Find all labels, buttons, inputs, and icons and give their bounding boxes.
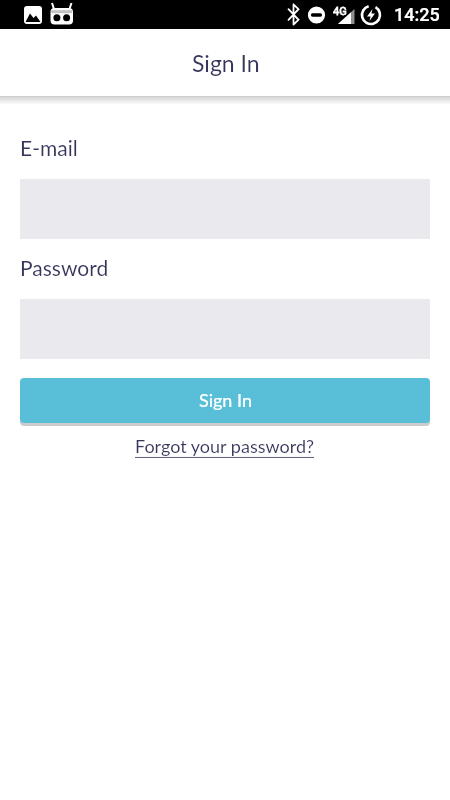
button[interactable]: Forgot your password? xyxy=(135,435,315,457)
staticText: 14:25 xyxy=(394,4,440,25)
staticText: Password xyxy=(20,255,109,280)
staticText: Sign In xyxy=(192,49,260,77)
staticText: 4G xyxy=(333,5,347,18)
button[interactable]: Sign In xyxy=(20,378,430,423)
staticText: E-mail xyxy=(20,135,78,160)
staticText: Sign In xyxy=(199,389,252,411)
